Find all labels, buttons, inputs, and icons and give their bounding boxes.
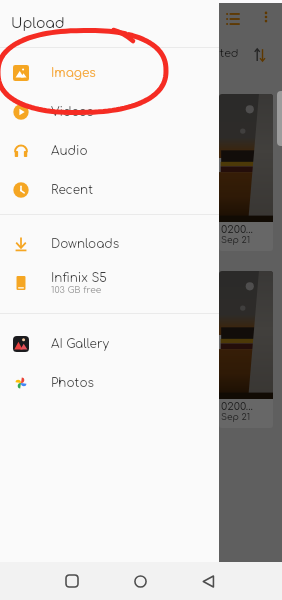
staticText: 0200... [221,400,253,412]
staticText: Sorted [200,47,239,59]
button[interactable]: 0200... [219,94,273,251]
button[interactable]: Audio [0,131,219,170]
button[interactable]: Images [0,53,219,92]
button[interactable]: Sort [253,48,267,62]
staticText: Recent [51,183,94,196]
button[interactable]: 0200... [219,271,273,428]
button[interactable]: AI Gallery [0,324,219,363]
staticText: Videos [51,105,94,118]
staticText: Downloads [51,237,120,250]
button[interactable]: Downloads [0,224,219,263]
staticText: Infinix S5 [51,271,107,284]
button[interactable]: Back [184,562,232,600]
button[interactable]: Photos [0,363,219,402]
button[interactable]: Recent apps [48,562,96,600]
staticText: Audio [51,144,88,157]
button[interactable]: Home [116,562,164,600]
staticText: Photos [51,376,95,389]
button[interactable]: Recent [0,170,219,209]
staticText: 103 GB free [51,285,102,295]
button[interactable]: Infinix S5 [0,263,219,302]
button[interactable]: Videos [0,92,219,131]
button[interactable]: Scroll [277,91,282,146]
button[interactable]: More options [260,11,272,23]
staticText: Upload [11,16,65,32]
staticText: Images [51,66,96,79]
staticText: AI Gallery [51,337,109,350]
staticText: Sep 21 [221,235,251,245]
staticText: Sep 21 [221,412,251,422]
staticText: 0200... [221,223,253,235]
button[interactable]: List view [226,12,240,26]
